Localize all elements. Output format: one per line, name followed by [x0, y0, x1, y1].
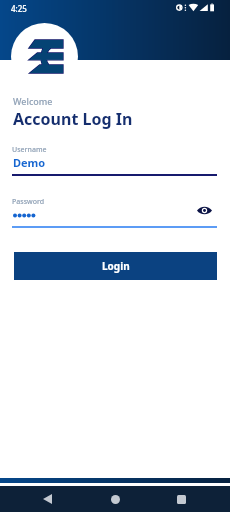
staticText: Password — [12, 197, 45, 207]
button[interactable]: Back — [32, 488, 62, 510]
button[interactable]: Recent apps — [166, 488, 196, 510]
button[interactable]: Show password — [193, 199, 215, 221]
button[interactable]: Home — [100, 488, 130, 510]
staticText: Welcome — [13, 95, 53, 107]
staticText: Account Log In — [13, 108, 133, 130]
staticText: Login — [102, 259, 130, 273]
staticText: Demo — [13, 155, 46, 170]
button[interactable]: Login — [14, 252, 217, 280]
staticText: 4:25 — [11, 3, 27, 14]
staticText: Username — [12, 145, 47, 155]
